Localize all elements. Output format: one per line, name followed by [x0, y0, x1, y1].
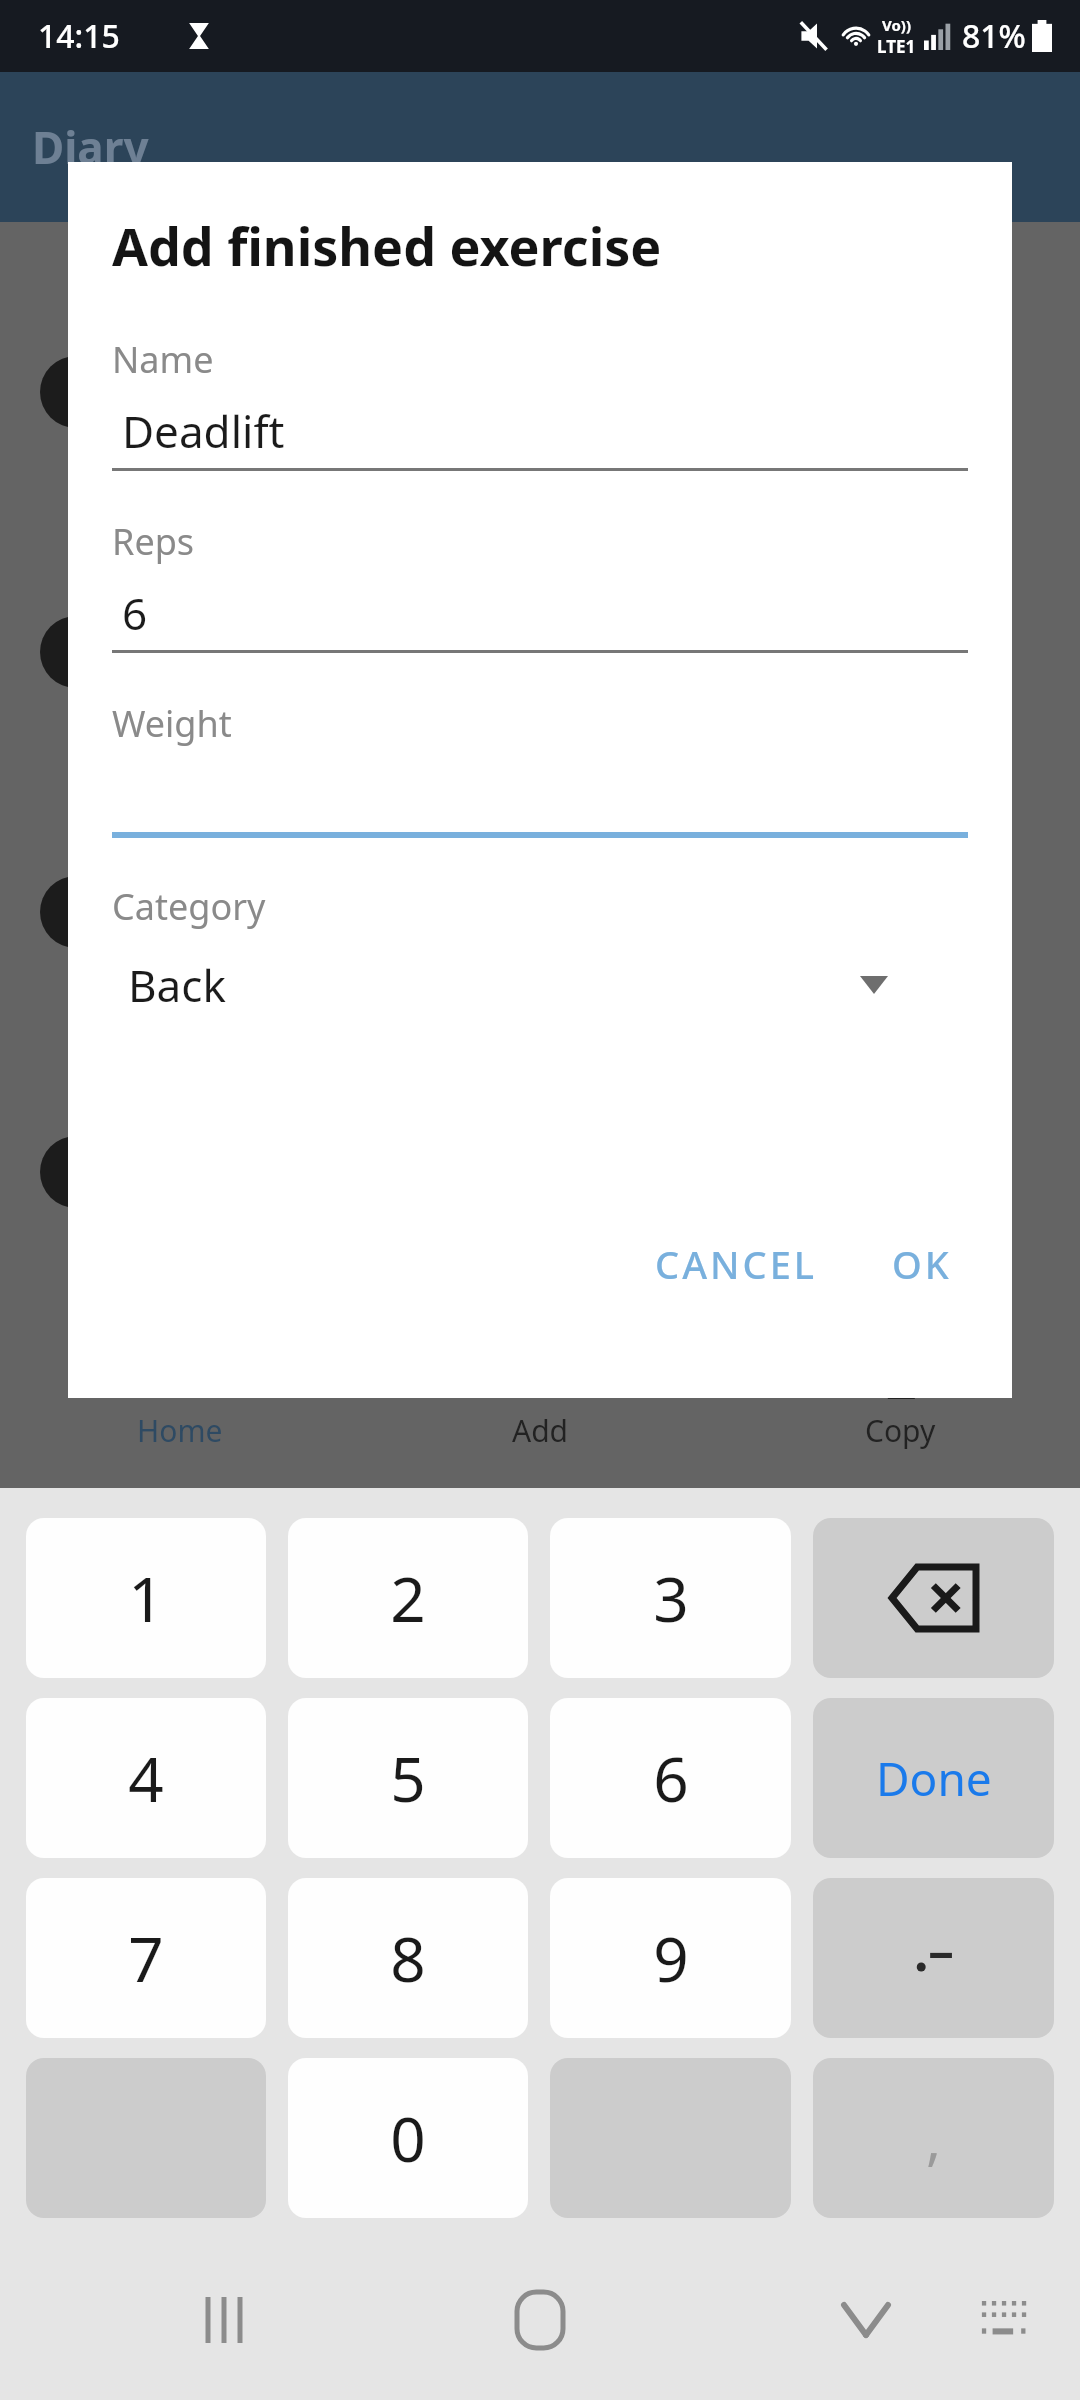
button[interactable]: 9 [550, 1878, 791, 2038]
button[interactable]: Home [0, 1318, 360, 1488]
staticText: 7 [128, 1916, 164, 2000]
staticText: LTE1 [877, 35, 916, 58]
staticText: Deadlift [122, 401, 285, 461]
staticText: 4 [128, 1736, 164, 1820]
button[interactable]: 1 [26, 1518, 266, 1678]
staticText: 5 [390, 1736, 426, 1820]
button[interactable]: Recent apps [186, 2282, 262, 2358]
button[interactable]: 4 [26, 1698, 266, 1858]
staticText: 6 [653, 1736, 689, 1820]
button[interactable]: 5 [288, 1698, 528, 1858]
staticText: Add [512, 1410, 569, 1451]
staticText: Vo)) [882, 15, 911, 35]
staticText: 1 [128, 1556, 164, 1640]
staticText: CANCEL [655, 1238, 818, 1290]
button[interactable]: 6 [550, 1698, 791, 1858]
button[interactable]: Dot or dash [813, 1878, 1054, 2038]
staticText: Name [112, 335, 214, 384]
button[interactable]: Copy [720, 1318, 1080, 1488]
staticText: 9 [653, 1916, 689, 2000]
button[interactable]: OK [870, 1220, 974, 1308]
staticText: , [926, 2100, 942, 2176]
button[interactable]: 3 [550, 1518, 791, 1678]
button[interactable]: Change keyboard [968, 2282, 1044, 2358]
button[interactable]: 8 [288, 1878, 528, 2038]
staticText: 6 [122, 583, 148, 643]
button[interactable]: Add [360, 1318, 720, 1488]
other: Select category [860, 976, 888, 994]
button[interactable]: 0 [288, 2058, 528, 2218]
button[interactable]: Weight [112, 699, 968, 838]
staticText: Reps [112, 517, 195, 566]
button[interactable]: Category [112, 882, 968, 1017]
staticText: 0 [390, 2096, 426, 2180]
button[interactable]: Backspace [813, 1518, 1054, 1678]
button[interactable]: 7 [26, 1878, 266, 2038]
button[interactable]: Hide keyboard [828, 2282, 904, 2358]
staticText: 81% [962, 14, 1026, 58]
staticText: Back [128, 955, 226, 1015]
staticText: Diary [32, 117, 149, 177]
staticText: OK [892, 1238, 952, 1290]
button[interactable]: Home [497, 2277, 583, 2363]
button[interactable]: Done [813, 1698, 1054, 1858]
button[interactable]: 2 [288, 1518, 528, 1678]
staticText: Done [876, 1747, 992, 1810]
staticText: 2 [390, 1556, 426, 1640]
staticText: Home [137, 1410, 223, 1451]
button[interactable]: Reps [112, 517, 968, 653]
staticText: 3 [653, 1556, 689, 1640]
staticText: 14:15 [38, 14, 120, 58]
staticText: Category [112, 882, 266, 931]
staticText: 8 [390, 1916, 426, 2000]
staticText: Copy [865, 1410, 936, 1451]
button[interactable]: Name [112, 335, 968, 471]
staticText: Add finished exercise [112, 210, 662, 281]
staticText: Weight [112, 699, 232, 748]
button[interactable]: CANCEL [633, 1220, 840, 1308]
